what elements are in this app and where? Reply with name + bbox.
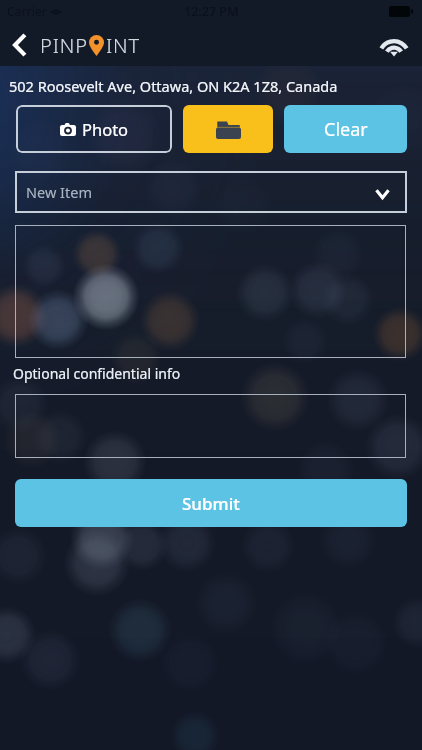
staticText: Photo: [82, 118, 129, 140]
button[interactable]: [15, 225, 406, 358]
button[interactable]: Submit: [15, 479, 407, 527]
staticText: Submit: [182, 492, 240, 515]
button[interactable]: New Item: [15, 171, 407, 213]
button[interactable]: Wifi status: [371, 25, 417, 61]
button[interactable]: Clear: [284, 105, 407, 153]
staticText: 502 Roosevelt Ave, Ottawa, ON K2A 1Z8, C…: [9, 76, 338, 96]
staticText: Clear: [324, 117, 368, 142]
staticText: New Item: [26, 182, 92, 202]
staticText: PINP: [40, 32, 88, 59]
button[interactable]: Photo: [16, 105, 172, 153]
button[interactable]: Browse files: [183, 105, 273, 153]
staticText: 12:27 PM: [184, 3, 239, 20]
button[interactable]: [15, 394, 406, 458]
staticText: INT: [106, 32, 141, 59]
staticText: Optional confidential info: [13, 364, 181, 383]
button[interactable]: Back: [4, 30, 34, 60]
